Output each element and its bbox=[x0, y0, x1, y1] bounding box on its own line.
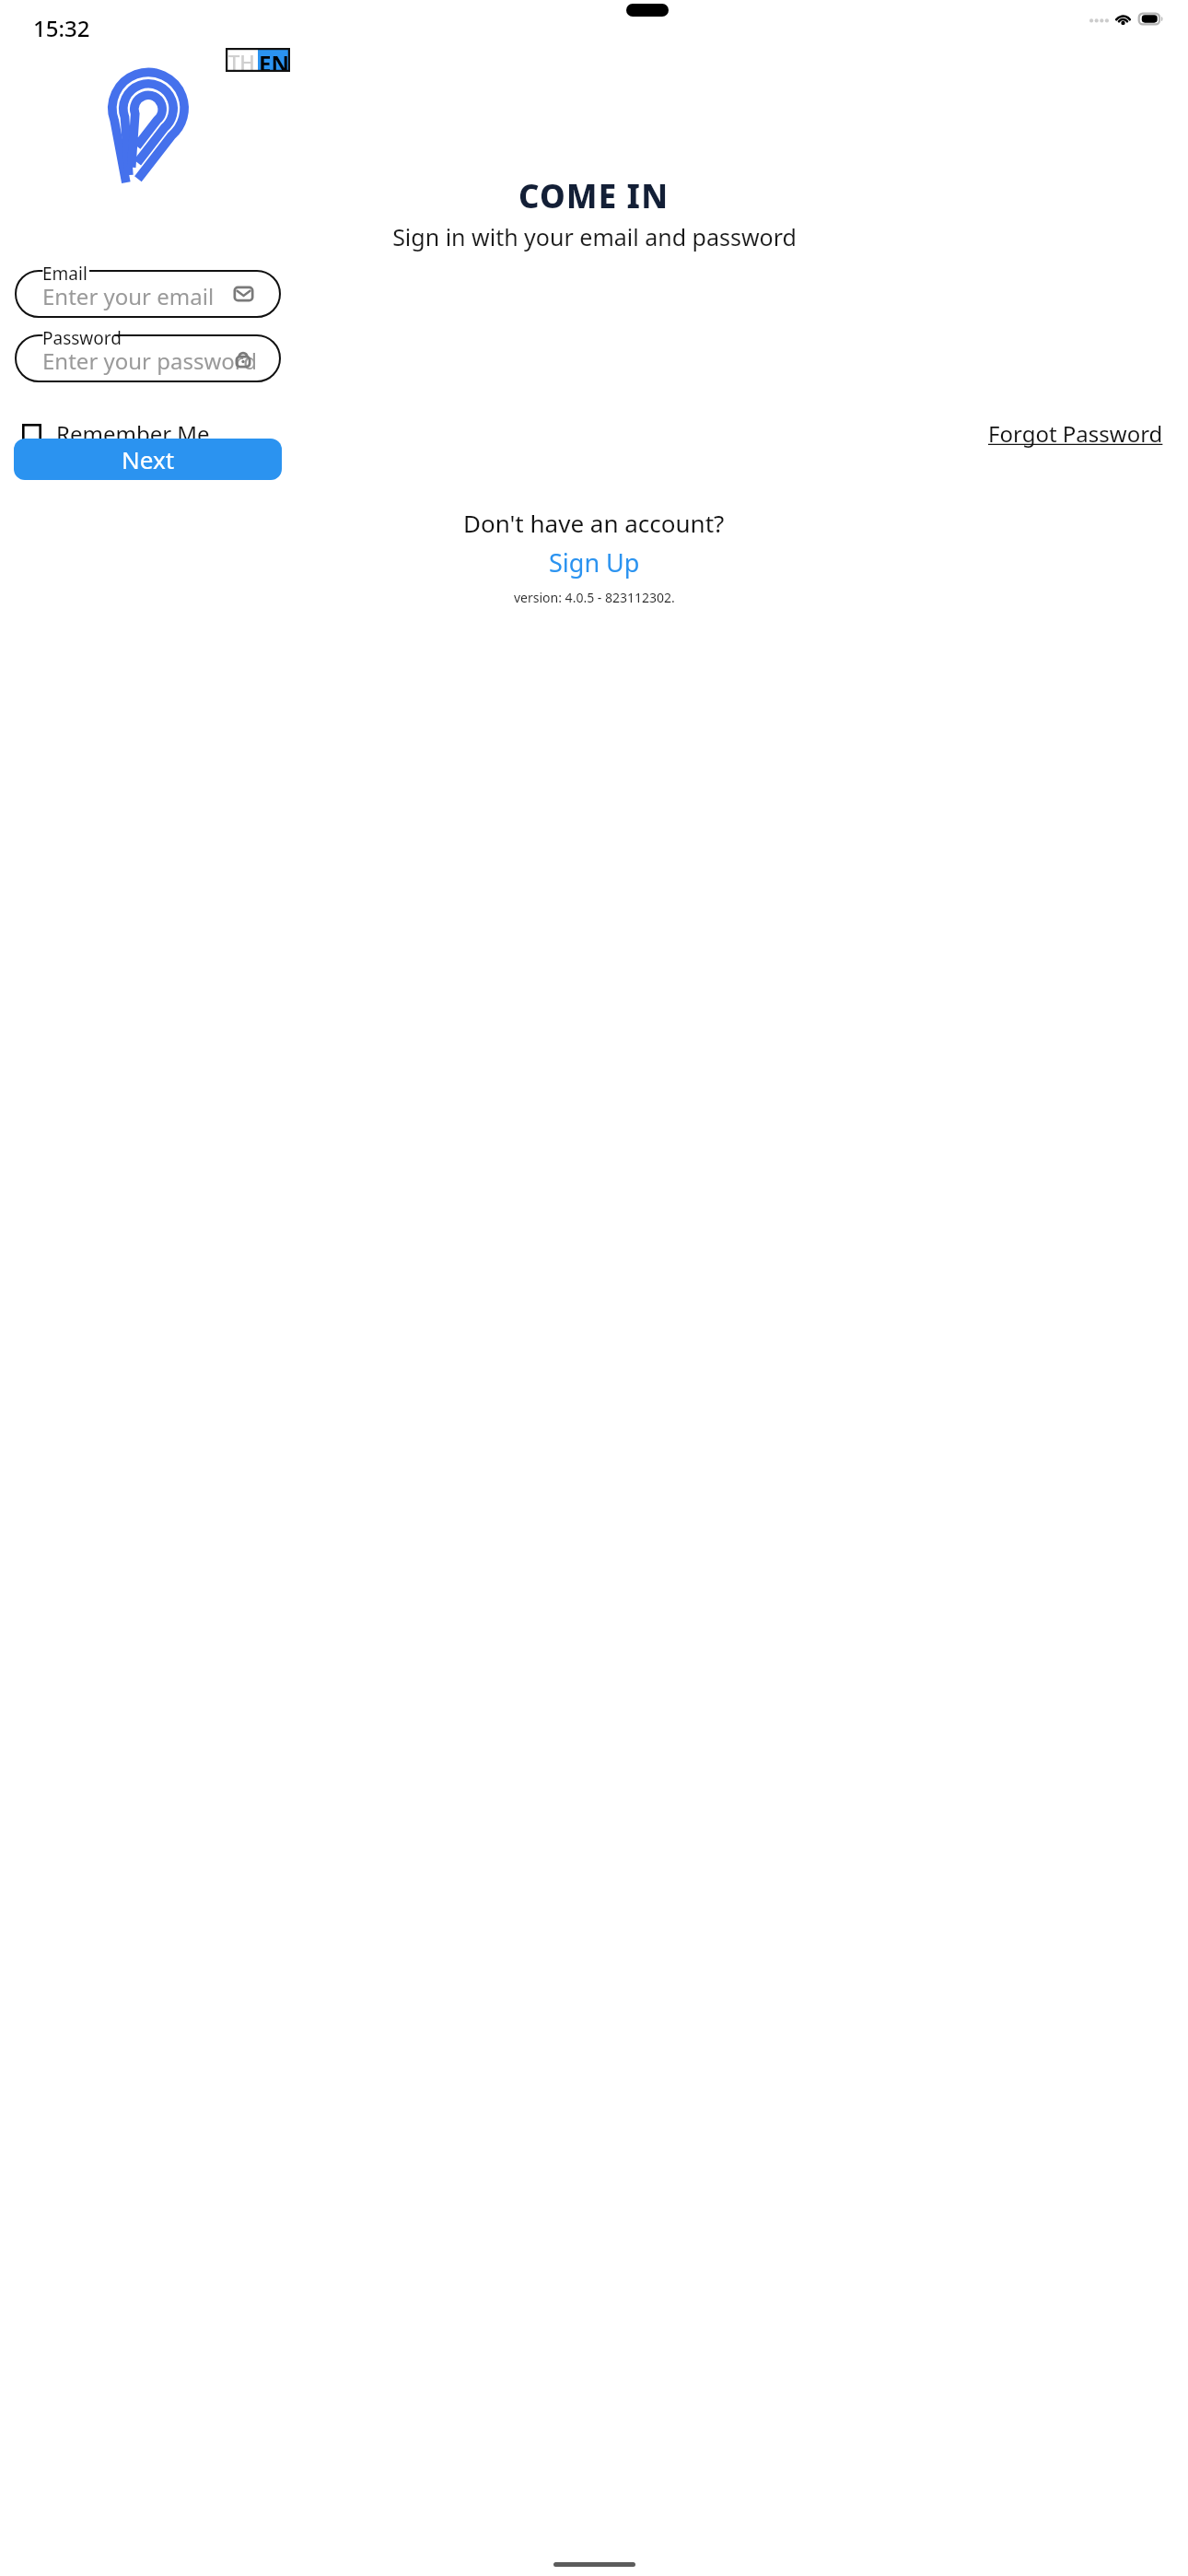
button[interactable]: Next bbox=[14, 439, 282, 480]
staticText: Email bbox=[42, 262, 87, 286]
staticText: TH bbox=[228, 48, 255, 72]
staticText: Don't have an account? bbox=[463, 507, 725, 539]
button[interactable]: Remember Me bbox=[22, 415, 210, 452]
staticText: Next bbox=[122, 443, 175, 475]
button[interactable]: Email bbox=[15, 270, 281, 318]
button[interactable]: TH bbox=[226, 48, 258, 72]
button[interactable]: Email bbox=[229, 280, 257, 308]
button[interactable]: Forgot Password bbox=[988, 415, 1163, 452]
button[interactable]: Show password bbox=[229, 345, 257, 372]
button[interactable]: Password bbox=[15, 334, 281, 382]
staticText: Password bbox=[42, 326, 122, 350]
staticText: version: 4.0.5 - 823112302. bbox=[514, 589, 675, 606]
staticText: Enter your password bbox=[42, 345, 258, 376]
staticText: Sign in with your email and password bbox=[392, 221, 797, 252]
staticText: Forgot Password bbox=[988, 418, 1163, 449]
staticText: Sign Up bbox=[549, 545, 640, 580]
button[interactable]: EN bbox=[258, 48, 290, 72]
staticText: Remember Me bbox=[56, 418, 210, 449]
staticText: COME IN bbox=[518, 174, 670, 218]
staticText: Enter your email bbox=[42, 281, 215, 311]
staticText: 15:32 bbox=[33, 13, 90, 43]
staticText: EN bbox=[259, 48, 289, 72]
button[interactable]: Sign Up bbox=[543, 544, 646, 581]
